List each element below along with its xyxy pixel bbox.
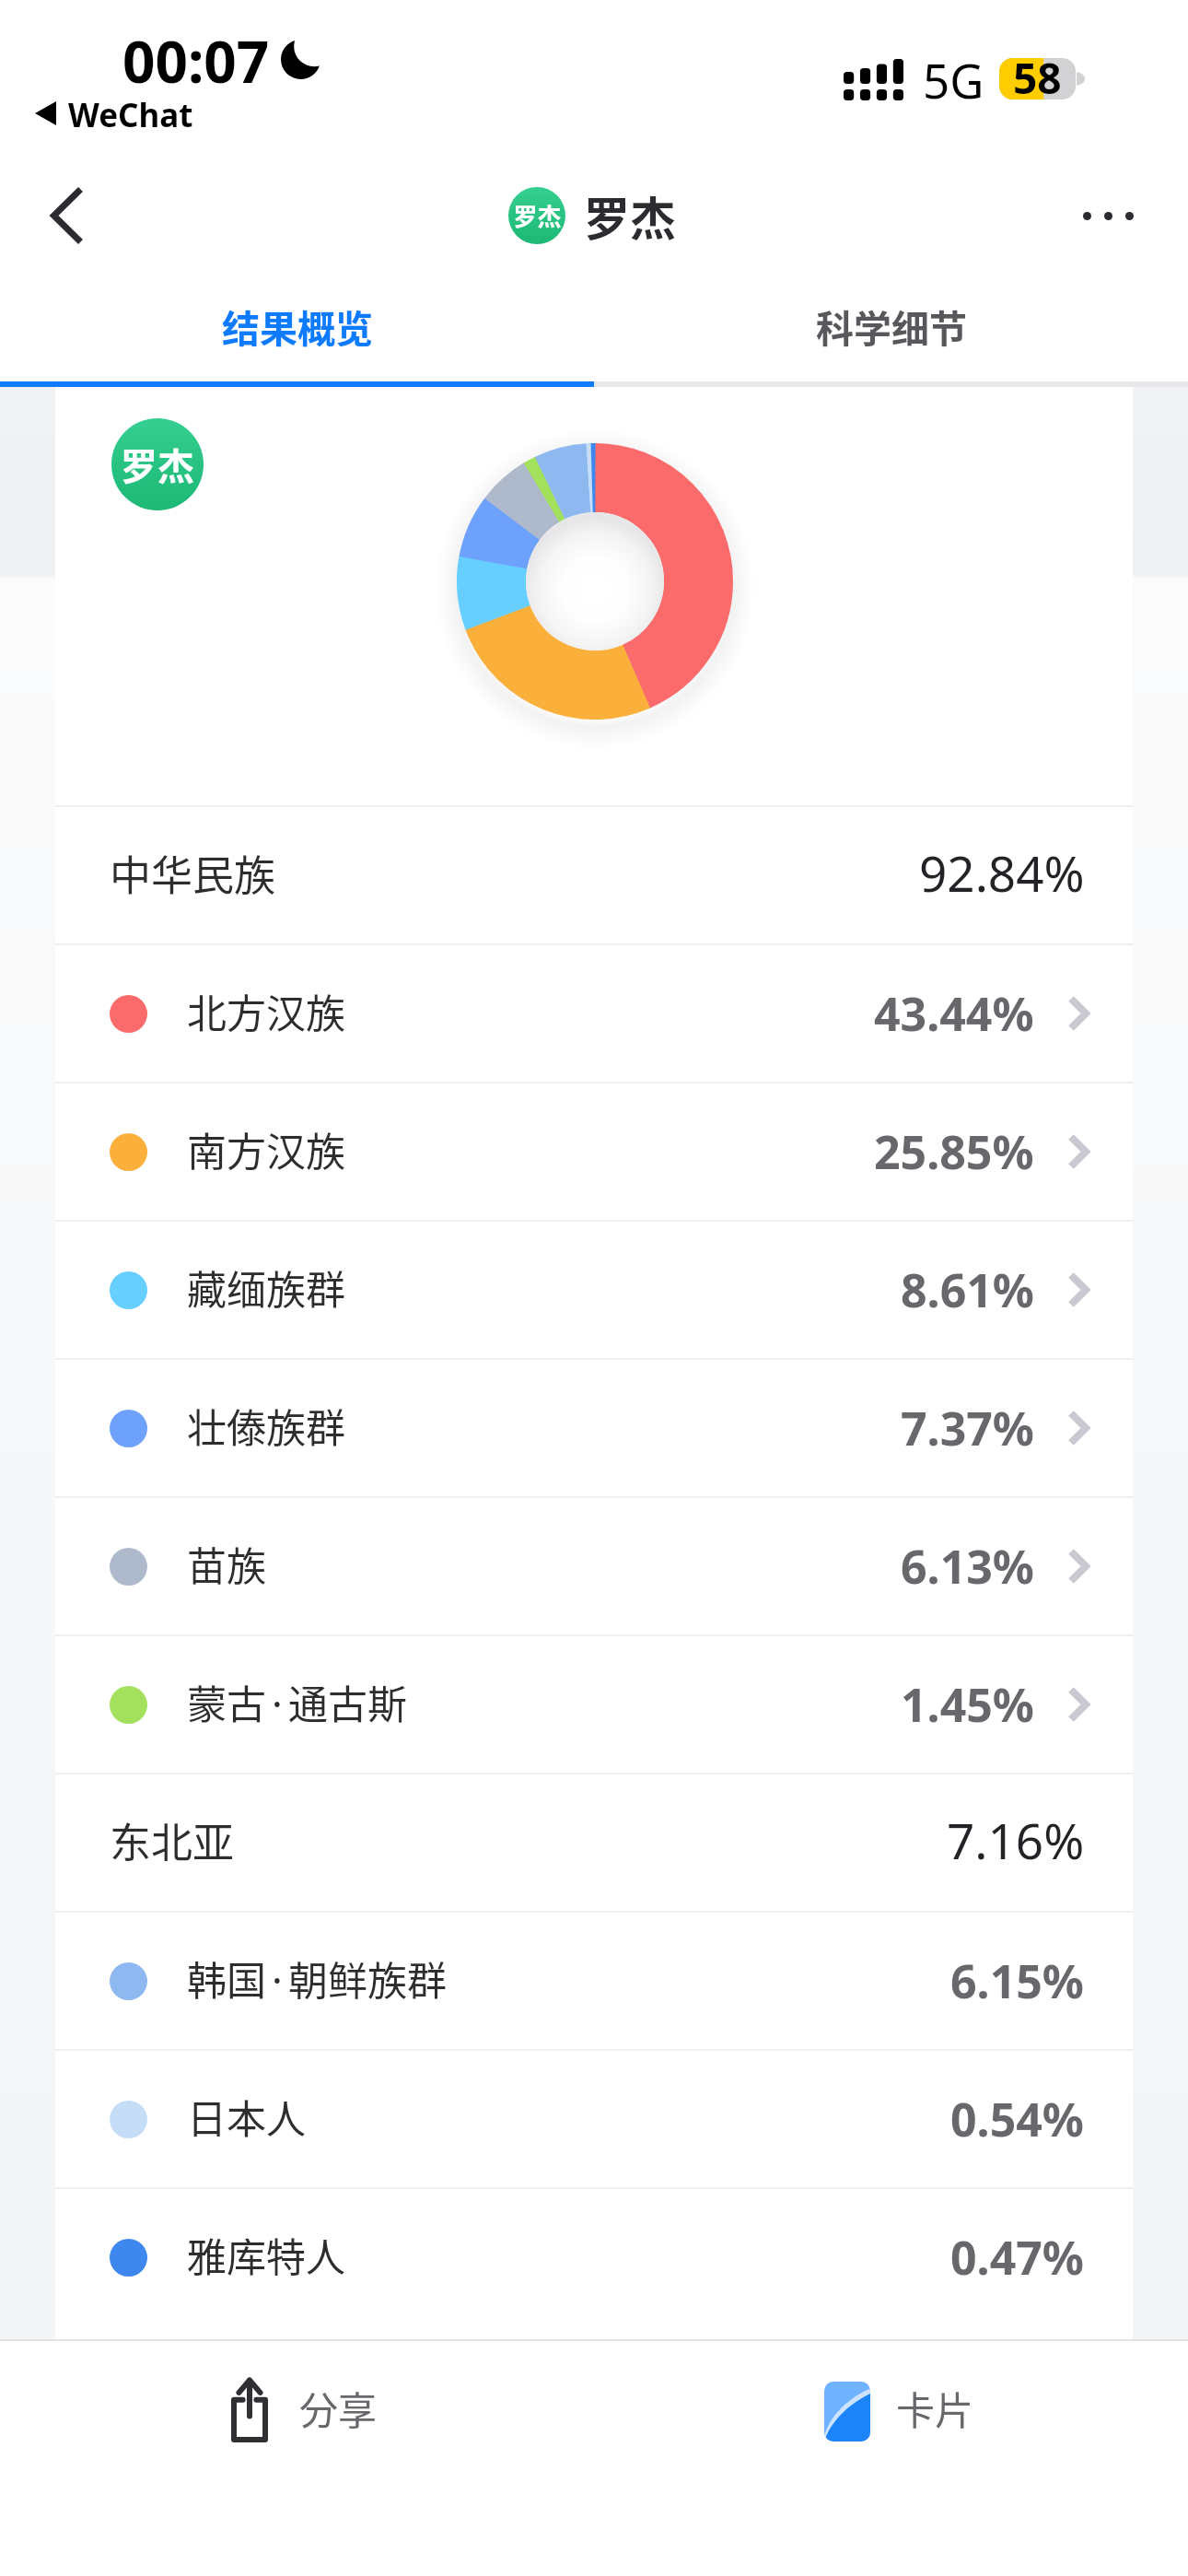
button[interactable]: 蒙古·通古斯	[55, 1636, 1133, 1773]
staticText: 92.84%	[919, 839, 1085, 906]
staticText: 雅库特人	[187, 2226, 345, 2283]
staticText: 蒙古·通古斯	[187, 1673, 408, 1730]
button[interactable]: More options	[1066, 173, 1150, 258]
button[interactable]: 韩国·朝鲜族群	[55, 1913, 1133, 2049]
staticText: 6.13%	[901, 1535, 1034, 1598]
staticText: 43.44%	[874, 982, 1034, 1045]
staticText: 7.16%	[947, 1807, 1085, 1873]
button[interactable]: 北方汉族	[55, 945, 1133, 1082]
staticText: 5G	[923, 48, 984, 111]
staticText: 东北亚	[110, 1810, 235, 1870]
button[interactable]: 日本人	[55, 2051, 1133, 2187]
button[interactable]: 卡片	[789, 2358, 1010, 2465]
staticText: 韩国·朝鲜族群	[187, 1950, 448, 2007]
staticText: 25.85%	[874, 1120, 1034, 1183]
staticText: 北方汉族	[187, 982, 345, 1039]
button[interactable]: 结果概览	[0, 270, 594, 381]
button[interactable]: 科学细节	[594, 270, 1188, 381]
staticText: 8.61%	[901, 1259, 1034, 1321]
staticText: 日本人	[187, 2088, 306, 2145]
button[interactable]: 苗族	[55, 1498, 1133, 1634]
staticText: 7.37%	[901, 1397, 1034, 1459]
staticText: 6.15%	[950, 1950, 1084, 2012]
staticText: 分享	[299, 2380, 378, 2436]
staticText: 0.54%	[950, 2088, 1084, 2150]
staticText: 卡片	[896, 2380, 974, 2436]
staticText: 58	[1013, 49, 1062, 107]
button[interactable]: 壮傣族群	[55, 1360, 1133, 1496]
button[interactable]: 雅库特人	[55, 2189, 1133, 2325]
staticText: 0.47%	[950, 2226, 1084, 2289]
staticText: 罗杰	[513, 198, 562, 233]
staticText: 00:07	[122, 22, 270, 100]
staticText: 藏缅族群	[187, 1259, 345, 1316]
staticText: 南方汉族	[187, 1120, 345, 1177]
staticText: 中华民族	[110, 843, 276, 903]
staticText: 壮傣族群	[187, 1397, 345, 1454]
staticText: 罗杰	[121, 438, 194, 491]
staticText: 苗族	[187, 1535, 266, 1592]
button[interactable]: 南方汉族	[55, 1083, 1133, 1220]
staticText: 罗杰	[584, 182, 676, 249]
button[interactable]: 藏缅族群	[55, 1222, 1133, 1358]
staticText: 1.45%	[901, 1673, 1034, 1736]
staticText: WeChat	[68, 93, 193, 137]
button[interactable]: Back	[25, 173, 110, 258]
staticText: 结果概览	[222, 299, 373, 353]
button[interactable]: 分享	[193, 2358, 414, 2465]
staticText: 科学细节	[816, 299, 967, 353]
